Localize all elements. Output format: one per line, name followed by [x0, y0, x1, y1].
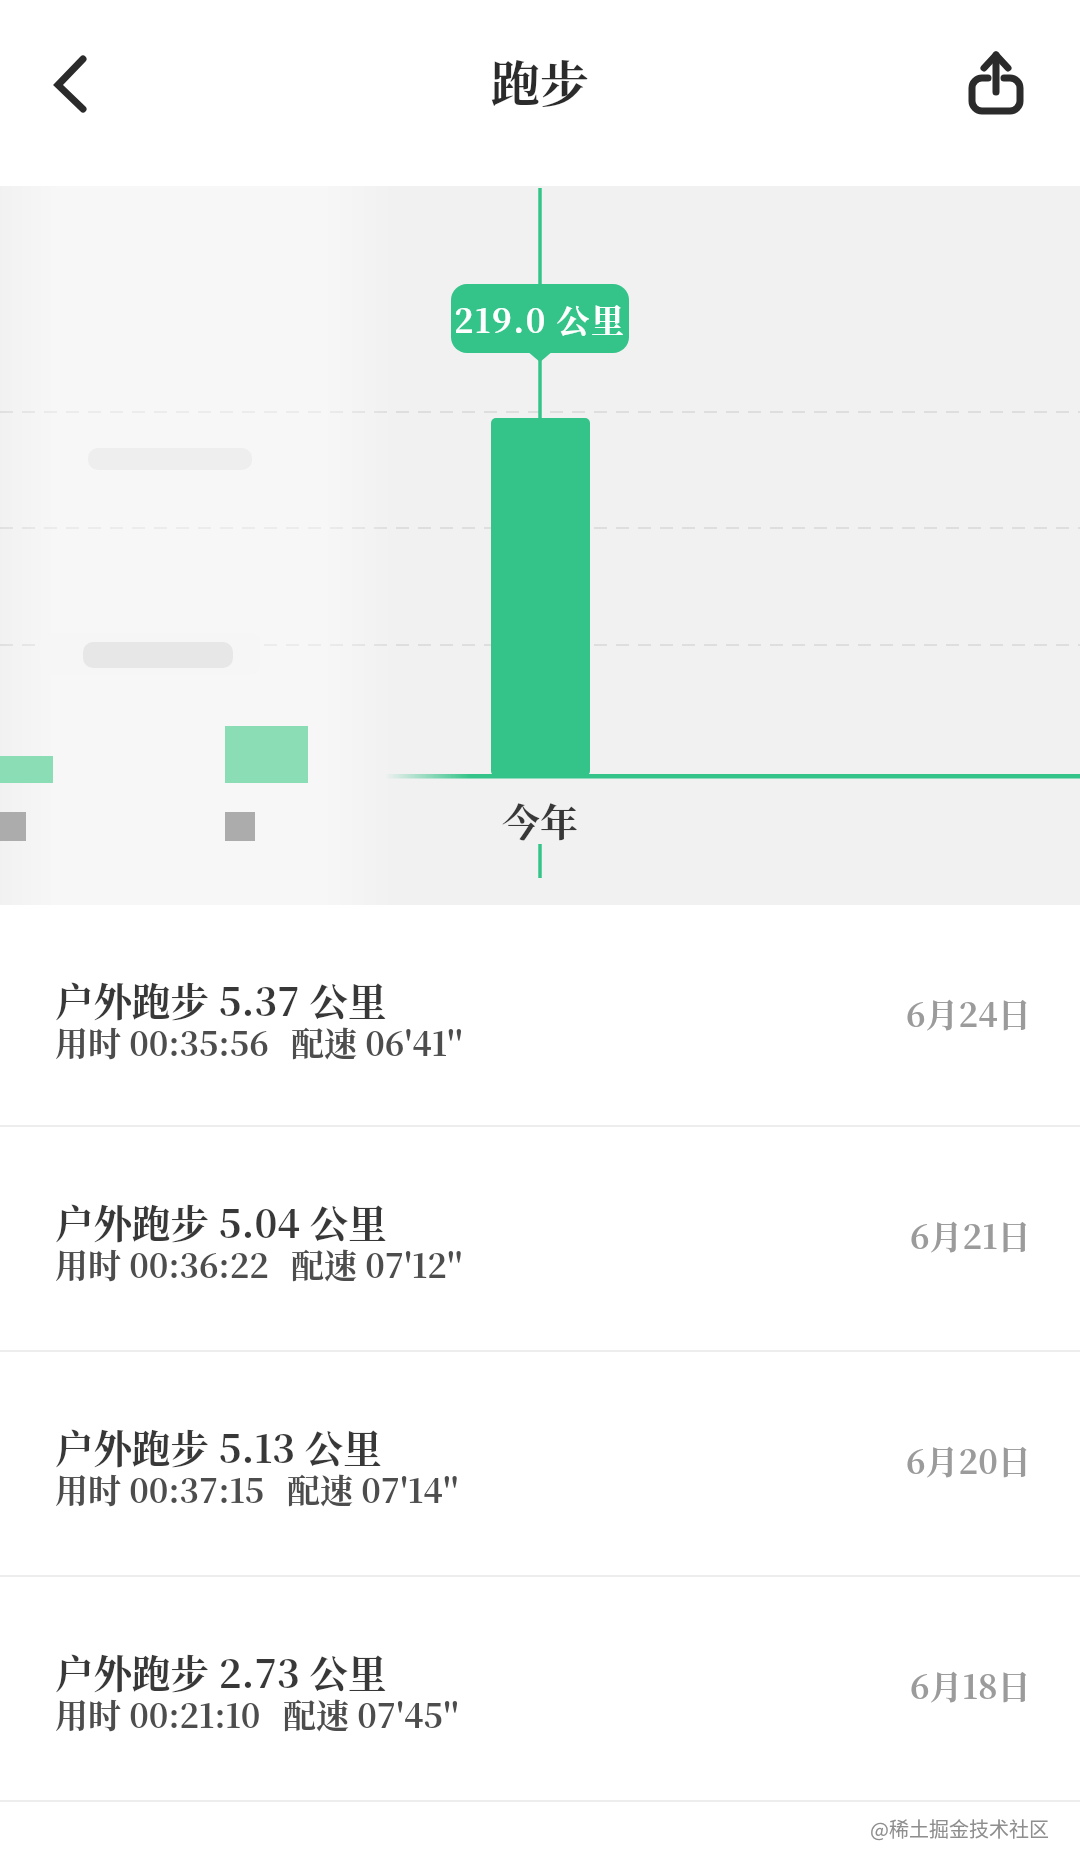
staticText: 配速 06'41''	[291, 1018, 463, 1065]
staticText: @稀土掘金技术社区	[870, 1814, 1049, 1843]
button[interactable]: 户外跑步 5.04 公里	[0, 1127, 1080, 1350]
staticText: 用时 00:37:15	[55, 1465, 265, 1512]
button[interactable]: 户外跑步 5.13 公里	[0, 1352, 1080, 1575]
button[interactable]	[955, 40, 1035, 130]
staticText: 配速 07'12''	[291, 1240, 463, 1287]
staticText: 配速 07'45''	[283, 1690, 459, 1737]
staticText: 6月18日	[910, 1661, 1031, 1708]
staticText: 6月20日	[906, 1436, 1031, 1483]
staticText: 配速 07'14''	[287, 1465, 459, 1512]
staticText: 户外跑步 2.73 公里	[55, 1644, 387, 1699]
staticText: 户外跑步 5.04 公里	[55, 1194, 387, 1249]
staticText: 用时 00:21:10	[55, 1690, 261, 1737]
staticText: 户外跑步 5.37 公里	[55, 972, 387, 1027]
staticText: 户外跑步 5.13 公里	[55, 1419, 382, 1474]
staticText: 用时 00:36:22	[55, 1240, 269, 1287]
button[interactable]	[40, 45, 100, 125]
staticText: 今年	[502, 792, 579, 847]
button[interactable]: 户外跑步 5.37 公里	[0, 905, 1080, 1125]
staticText: 跑步	[491, 46, 590, 116]
button[interactable]: 户外跑步 2.73 公里	[0, 1577, 1080, 1800]
staticText: 219.0 公里	[454, 295, 626, 342]
staticText: 6月24日	[906, 989, 1031, 1036]
staticText: 6月21日	[910, 1211, 1031, 1258]
staticText: 用时 00:35:56	[55, 1018, 269, 1065]
